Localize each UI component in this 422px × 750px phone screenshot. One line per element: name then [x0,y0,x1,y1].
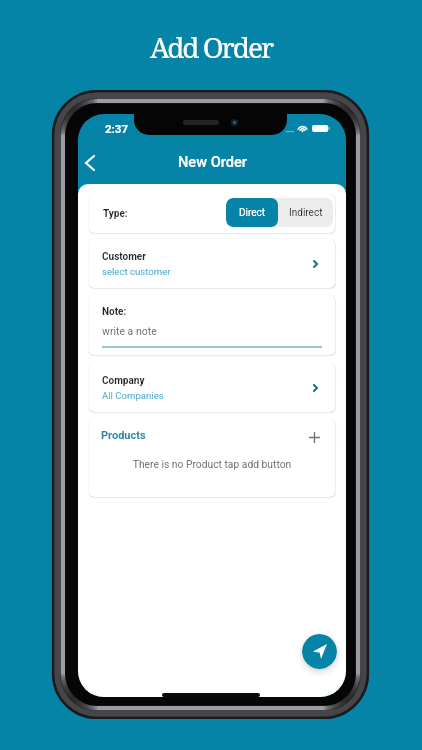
staticText: Add Order [150,28,273,66]
staticText: All Companies [102,390,164,401]
staticText: select customer [102,266,171,277]
staticText: write a note [102,325,157,337]
staticText: Note: [102,306,127,318]
button[interactable]: Indirect [278,198,333,227]
staticText: Direct [239,207,266,219]
staticText: Indirect [289,207,323,219]
staticText: Products [101,429,146,442]
button[interactable]: Company [89,363,335,412]
button[interactable]: Customer [89,239,335,288]
staticText: There is no Product tap add button [89,458,335,470]
staticText: Company [102,375,145,387]
staticText: New Order [178,153,247,170]
button[interactable]: Direct [226,198,278,227]
staticText: Customer [102,251,146,263]
button[interactable]: Send order [302,634,337,669]
staticText: Type: [103,208,128,220]
button[interactable]: Back [78,150,103,176]
staticText: 2:37 [105,122,129,135]
button[interactable]: Add product [305,428,323,446]
